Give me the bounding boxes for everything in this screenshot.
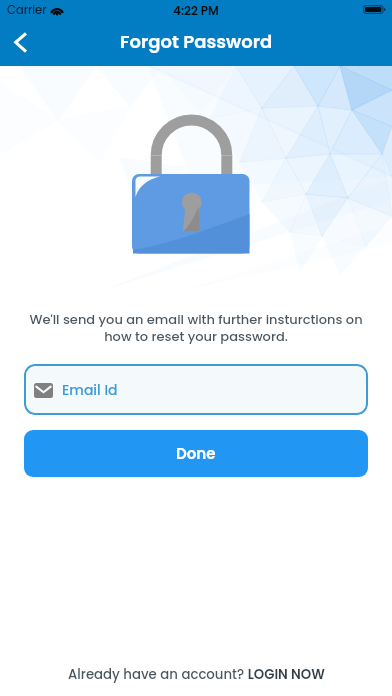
staticText: Email Id: [62, 380, 118, 400]
staticText: 4:22 PM: [173, 2, 219, 19]
button[interactable]: Already have an account? LOGIN NOW: [0, 660, 392, 688]
staticText: Done: [176, 443, 216, 464]
staticText: Forgot Password: [120, 29, 273, 54]
staticText: Carrier: [7, 2, 47, 18]
staticText: We'll send you an email with further ins…: [22, 310, 370, 345]
button[interactable]: Done: [24, 430, 368, 477]
staticText: Already have an account? LOGIN NOW: [68, 665, 325, 684]
button[interactable]: Email Id: [24, 364, 368, 415]
button[interactable]: Back: [0, 20, 42, 64]
